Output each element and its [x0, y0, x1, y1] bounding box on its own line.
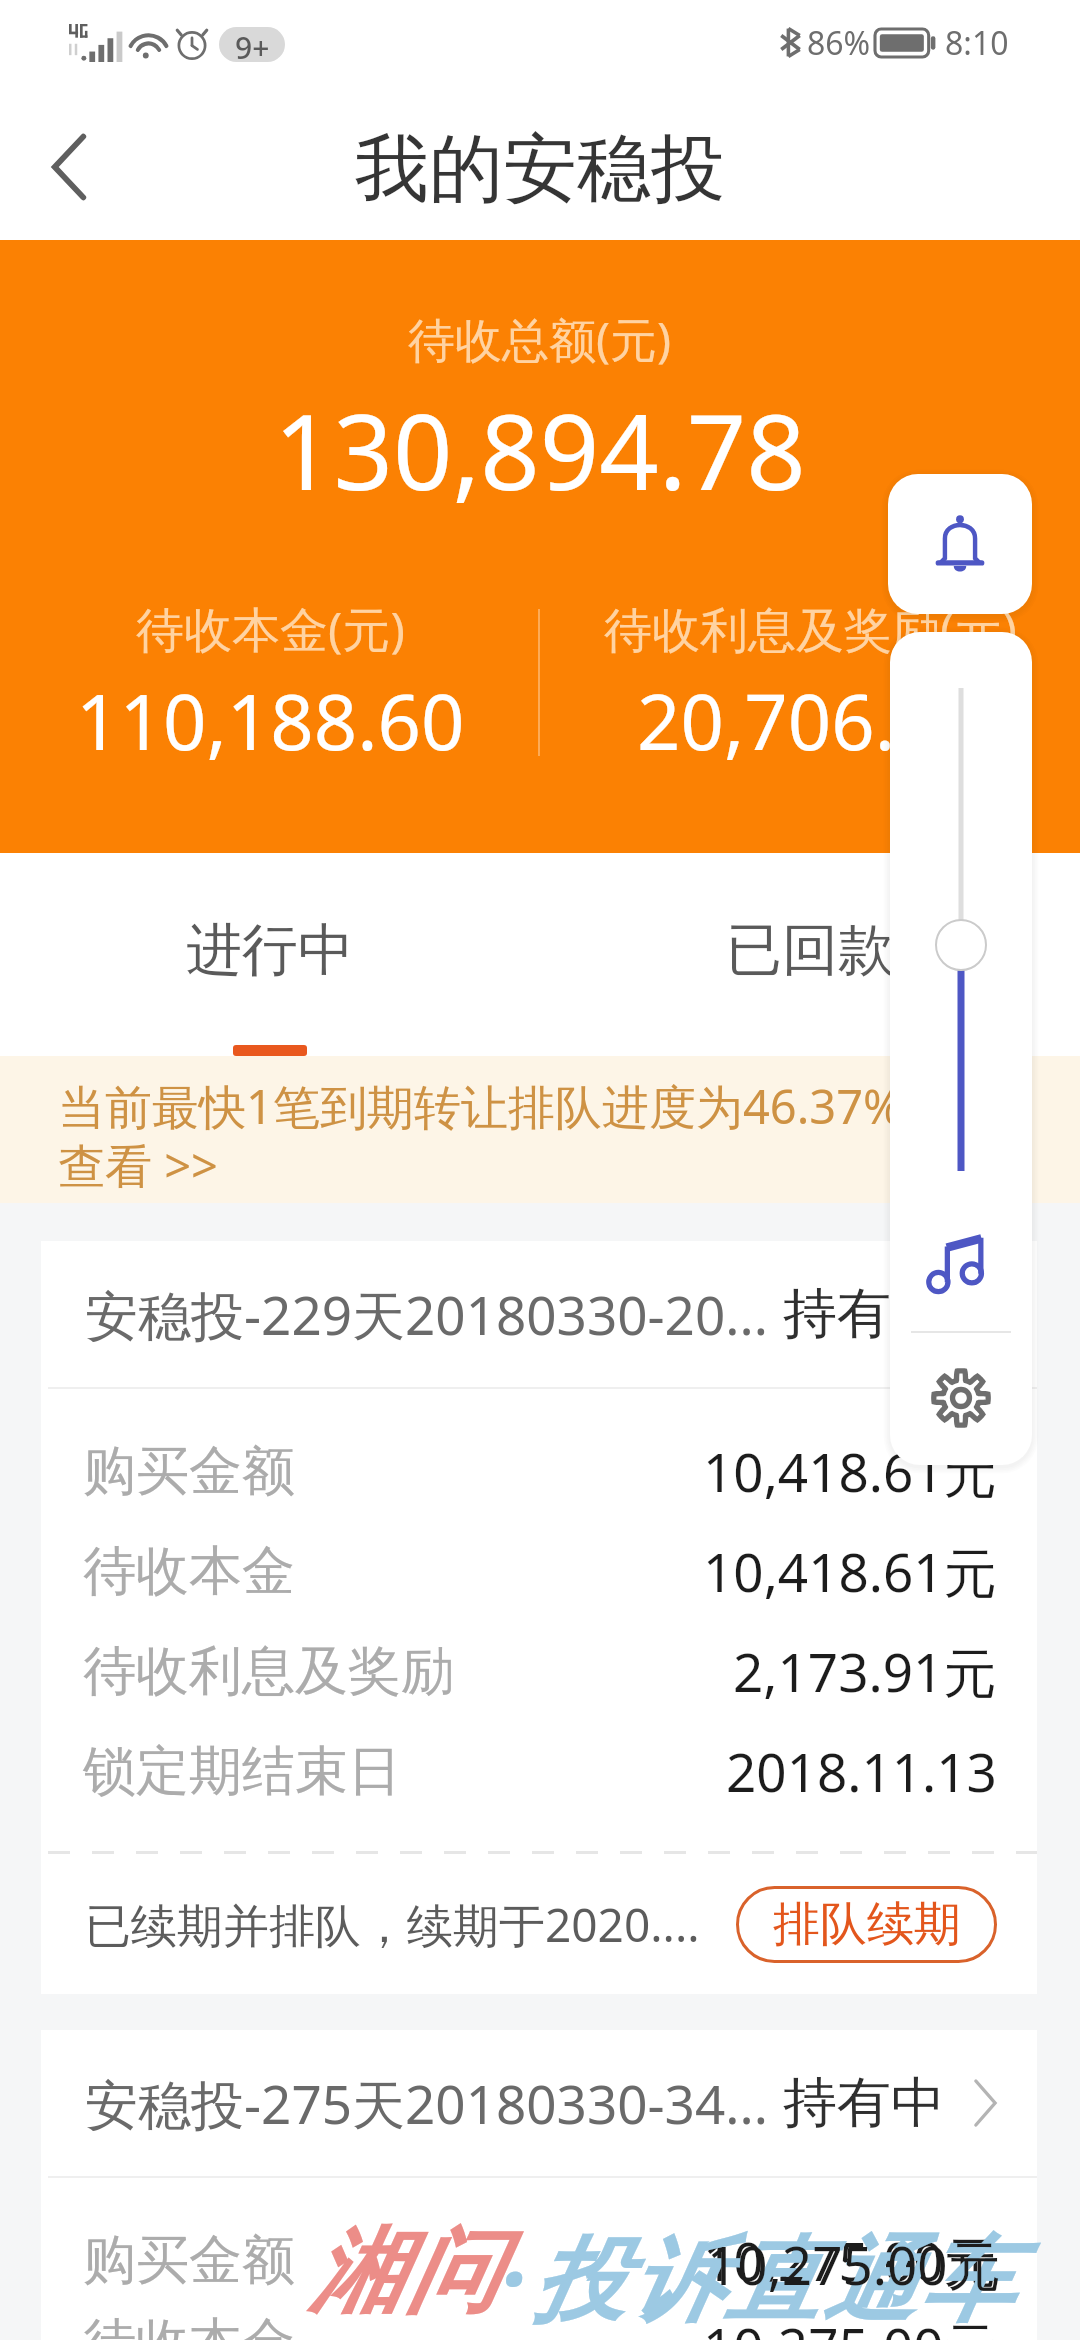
button[interactable]: Settings: [913, 1350, 1009, 1446]
staticText: 10,418.61元: [703, 1535, 997, 1607]
button[interactable]: Music: [913, 1217, 1009, 1313]
staticText: 9+: [235, 27, 270, 62]
staticText: 待收本金: [83, 1538, 295, 1605]
button[interactable]: 排队续期: [736, 1886, 997, 1963]
staticText: 已回款: [726, 915, 894, 986]
button[interactable]: 进行中: [0, 853, 540, 1056]
button[interactable]: Back: [0, 90, 130, 240]
staticText: 86%: [807, 21, 871, 65]
staticText: 2,173.91元: [733, 1635, 997, 1707]
staticText: 10,275.00元: [703, 2310, 997, 2340]
staticText: 购买金额: [83, 1438, 295, 1505]
staticText: ·投诉直通车: [500, 2214, 1017, 2340]
staticText: 待收本金(元): [136, 596, 405, 662]
staticText: 2018.11.13: [726, 1735, 997, 1807]
staticText: 已续期并排队，续期于2020....: [85, 1893, 736, 1956]
staticText: 8:10: [945, 21, 1009, 65]
staticText: 待收总额(元): [408, 307, 672, 371]
staticText: 查看 >>: [58, 1133, 218, 1197]
staticText: 110,188.60: [76, 669, 465, 773]
staticText: 我的安稳投: [355, 123, 725, 216]
staticText: 20,706.18: [637, 669, 983, 773]
staticText: 10,418.61元: [703, 1435, 997, 1507]
staticText: 10,275.00元: [707, 2228, 1001, 2300]
staticText: 安稳投-275天20180330-34...: [85, 2067, 768, 2139]
staticText: 锁定期结束日: [83, 1738, 401, 1805]
staticText: 进行中: [186, 915, 354, 986]
staticText: 安稳投-229天20180330-20...: [85, 1278, 768, 1350]
staticText: 持有中: [783, 1280, 945, 1348]
button[interactable]: 安稳投-275天20180330-34...: [41, 2030, 1037, 2176]
staticText: 待收利息及奖励(元): [604, 596, 1017, 662]
staticText: 购买金额: [83, 2227, 295, 2294]
staticText: 130,894.78: [274, 379, 806, 521]
staticText: 待收利息及奖励: [83, 1638, 454, 1705]
staticText: 待收本金: [83, 2310, 295, 2340]
button[interactable]: 安稳投-229天20180330-20...: [41, 1241, 1037, 1387]
staticText: 当前最快1笔到期转让排队进度为46.37%: [58, 1074, 903, 1138]
button[interactable]: 已回款: [540, 853, 1080, 1056]
button[interactable]: Notifications: [888, 474, 1032, 614]
staticText: 湘问: [306, 2214, 500, 2330]
staticText: 10,275.00元: [703, 2224, 997, 2296]
staticText: 持有中: [783, 2069, 945, 2137]
staticText: 排队续期: [773, 1895, 961, 1954]
